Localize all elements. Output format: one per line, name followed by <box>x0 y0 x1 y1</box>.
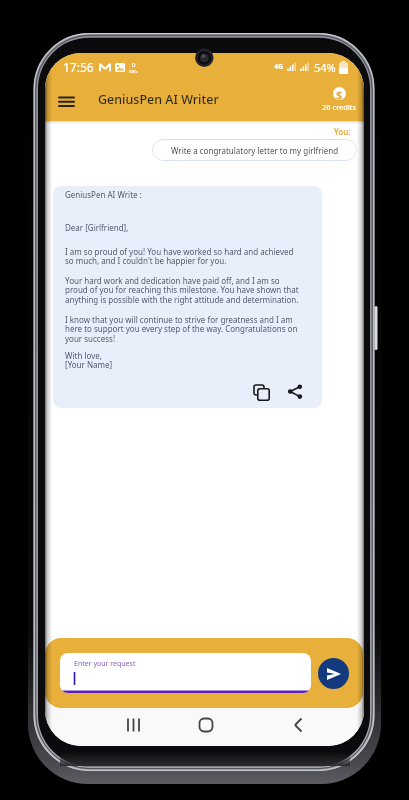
staticText: You: <box>334 126 351 137</box>
staticText: Dear [Girlfriend], <box>65 222 129 233</box>
staticText: I am so proud of you! You have worked so… <box>65 246 294 267</box>
staticText: I know that you will continue to strive … <box>65 314 298 345</box>
staticText: With love, [Your Name] <box>65 350 113 371</box>
staticText: 54% <box>314 60 336 75</box>
staticText: GeniusPen AI Write : <box>65 189 142 200</box>
staticText: Your hard work and dedication have paid … <box>65 275 299 306</box>
button[interactable]: Enter your request <box>60 653 311 693</box>
staticText: 26 credits <box>322 102 357 112</box>
staticText: 0 <box>132 61 136 69</box>
button[interactable] <box>53 88 79 114</box>
staticText: GeniusPen AI Writer <box>98 91 219 108</box>
staticText: 4G <box>274 62 284 72</box>
button[interactable] <box>252 383 272 403</box>
button[interactable] <box>198 717 214 733</box>
button[interactable] <box>318 658 349 689</box>
staticText: Write a congratulatory letter to my girl… <box>171 145 339 156</box>
button[interactable]: Write a congratulatory letter to my girl… <box>152 139 357 161</box>
button[interactable] <box>291 717 307 733</box>
staticText: $ <box>336 87 343 100</box>
staticText: Enter your request <box>74 659 136 669</box>
staticText: 17:56 <box>63 59 94 75</box>
staticText: KB/s <box>129 69 138 74</box>
button[interactable] <box>287 384 304 401</box>
button[interactable] <box>126 717 142 733</box>
button[interactable]: $ <box>322 87 357 112</box>
